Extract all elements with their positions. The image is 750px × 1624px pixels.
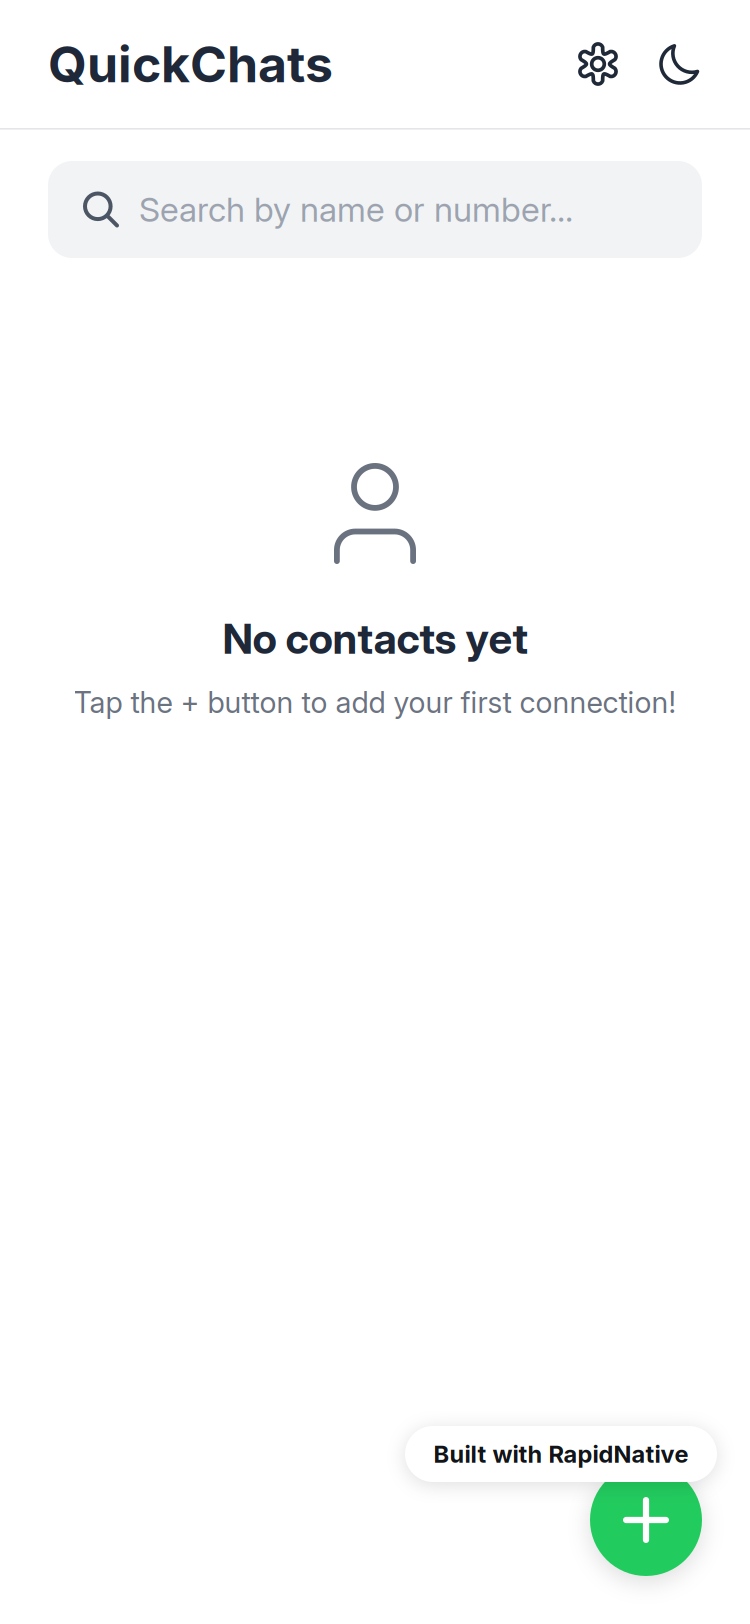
staticText: Built with RapidNative (433, 1440, 688, 1468)
staticText: Tap the + button to add your first conne… (73, 685, 676, 720)
button[interactable]: Toggle dark mode (648, 28, 712, 100)
button[interactable]: Add contact (590, 1464, 702, 1576)
staticText: Search by name or number... (139, 189, 573, 230)
button[interactable]: Search by name or number... (48, 161, 702, 258)
staticText: QuickChats (48, 34, 333, 94)
staticText: No contacts yet (222, 613, 527, 664)
button[interactable]: Settings (566, 28, 630, 100)
